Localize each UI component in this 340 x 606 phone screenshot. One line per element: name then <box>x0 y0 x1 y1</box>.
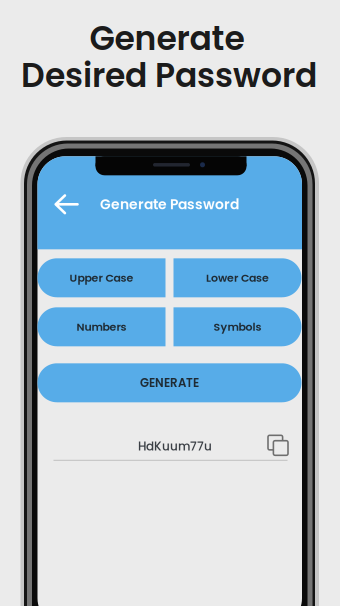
button[interactable]: Numbers <box>37 307 165 346</box>
button[interactable]: Lower Case <box>173 258 301 297</box>
button[interactable]: Upper Case <box>37 258 165 297</box>
button[interactable]: Copy password <box>263 430 293 460</box>
staticText: Upper Case <box>69 270 133 285</box>
staticText: Generate Password <box>100 195 239 214</box>
staticText: HdKuum77u <box>138 438 212 455</box>
staticText: Desired Password <box>21 52 317 99</box>
button[interactable]: Symbols <box>173 307 301 346</box>
staticText: Symbols <box>213 319 261 334</box>
button[interactable]: GENERATE <box>37 363 301 402</box>
staticText: GENERATE <box>140 375 199 391</box>
button[interactable]: Back <box>47 187 84 221</box>
staticText: Numbers <box>76 319 126 334</box>
staticText: Lower Case <box>206 270 269 285</box>
staticText: Generate <box>89 15 244 62</box>
